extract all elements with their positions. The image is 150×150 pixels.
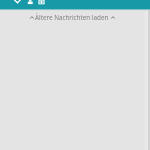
button[interactable]: Labels bbox=[38, 0, 46, 9]
button[interactable]: Collapse selection bbox=[13, 0, 22, 9]
button[interactable]: Archive bbox=[27, 0, 34, 9]
button[interactable]: Ältere Nachrichten laden bbox=[0, 11, 150, 22]
staticText: Ältere Nachrichten laden bbox=[35, 13, 109, 22]
